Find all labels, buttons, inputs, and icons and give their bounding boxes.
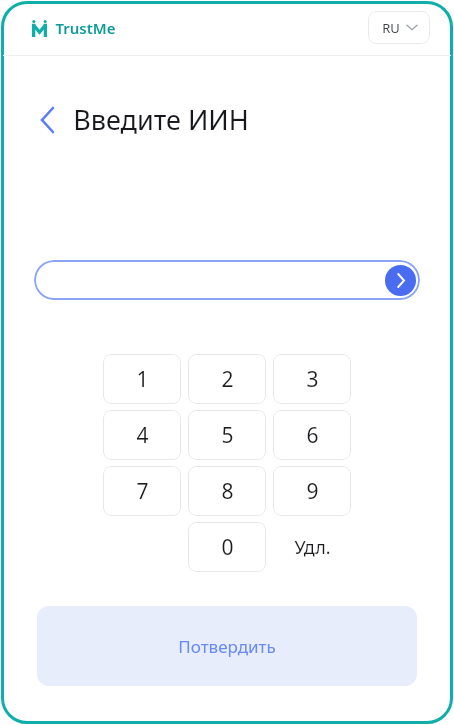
button[interactable]: Потвердить <box>37 606 417 686</box>
staticText: 3 <box>306 365 319 394</box>
staticText: 6 <box>306 421 319 450</box>
staticText: Потвердить <box>178 635 276 658</box>
button[interactable]: 0 <box>188 522 266 572</box>
staticText: Удл. <box>294 535 331 560</box>
button[interactable]: Удл. <box>273 522 351 572</box>
staticText: 5 <box>221 421 234 450</box>
button[interactable]: RU <box>368 11 430 44</box>
button[interactable]: Back <box>30 103 64 137</box>
button[interactable]: 4 <box>103 410 181 460</box>
staticText: 7 <box>136 477 149 506</box>
button[interactable]: 7 <box>103 466 181 516</box>
staticText: TrustMe <box>55 18 116 38</box>
button[interactable]: TrustMe <box>32 18 116 38</box>
staticText: 4 <box>136 421 149 450</box>
staticText: 1 <box>136 365 149 394</box>
staticText: Введите ИИН <box>73 101 249 138</box>
button[interactable]: 1 <box>103 354 181 404</box>
button[interactable]: Submit <box>385 265 416 296</box>
button[interactable]: 2 <box>188 354 266 404</box>
button[interactable]: 5 <box>188 410 266 460</box>
staticText: 9 <box>306 477 319 506</box>
staticText: 0 <box>221 533 234 562</box>
button[interactable]: 9 <box>273 466 351 516</box>
button[interactable]: Submit <box>34 260 420 300</box>
staticText: 8 <box>221 477 234 506</box>
button[interactable]: 3 <box>273 354 351 404</box>
staticText: RU <box>382 19 400 37</box>
staticText: 2 <box>221 365 234 394</box>
button[interactable]: 8 <box>188 466 266 516</box>
button[interactable]: 6 <box>273 410 351 460</box>
